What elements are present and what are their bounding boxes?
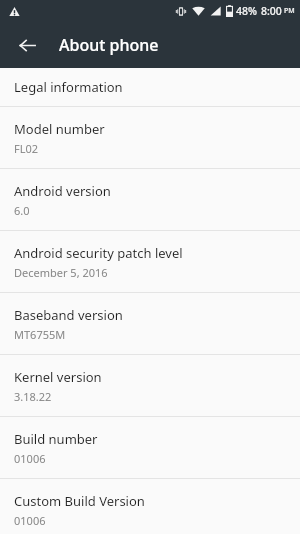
staticText: About phone [59,34,159,56]
staticText: Android security patch level [14,244,183,262]
button[interactable]: Baseband version [0,293,300,354]
staticText: 01006 [14,451,46,466]
button[interactable]: Build number [0,417,300,478]
staticText: 6.0 [14,203,30,218]
staticText: Legal information [14,78,123,96]
staticText: December 5, 2016 [14,265,108,280]
button[interactable]: Model number [0,107,300,168]
button[interactable]: Custom Build Version [0,479,300,534]
staticText: 48% [236,4,257,18]
staticText: 01006 [14,513,46,528]
staticText: Android version [14,182,111,200]
staticText: 8:00 [261,4,282,18]
staticText: Custom Build Version [14,492,145,510]
staticText: MT6755M [14,327,66,342]
staticText: 3.18.22 [14,389,52,404]
staticText: Model number [14,120,105,138]
staticText: PM [284,6,295,16]
button[interactable]: Kernel version [0,355,300,416]
staticText: Baseband version [14,306,123,324]
staticText: Build number [14,430,98,448]
button[interactable]: Legal information [0,68,300,106]
button[interactable]: Android security patch level [0,231,300,292]
button[interactable]: Android version [0,169,300,230]
button[interactable]: Back [10,28,44,62]
staticText: Kernel version [14,368,102,386]
staticText: FL02 [14,141,39,156]
